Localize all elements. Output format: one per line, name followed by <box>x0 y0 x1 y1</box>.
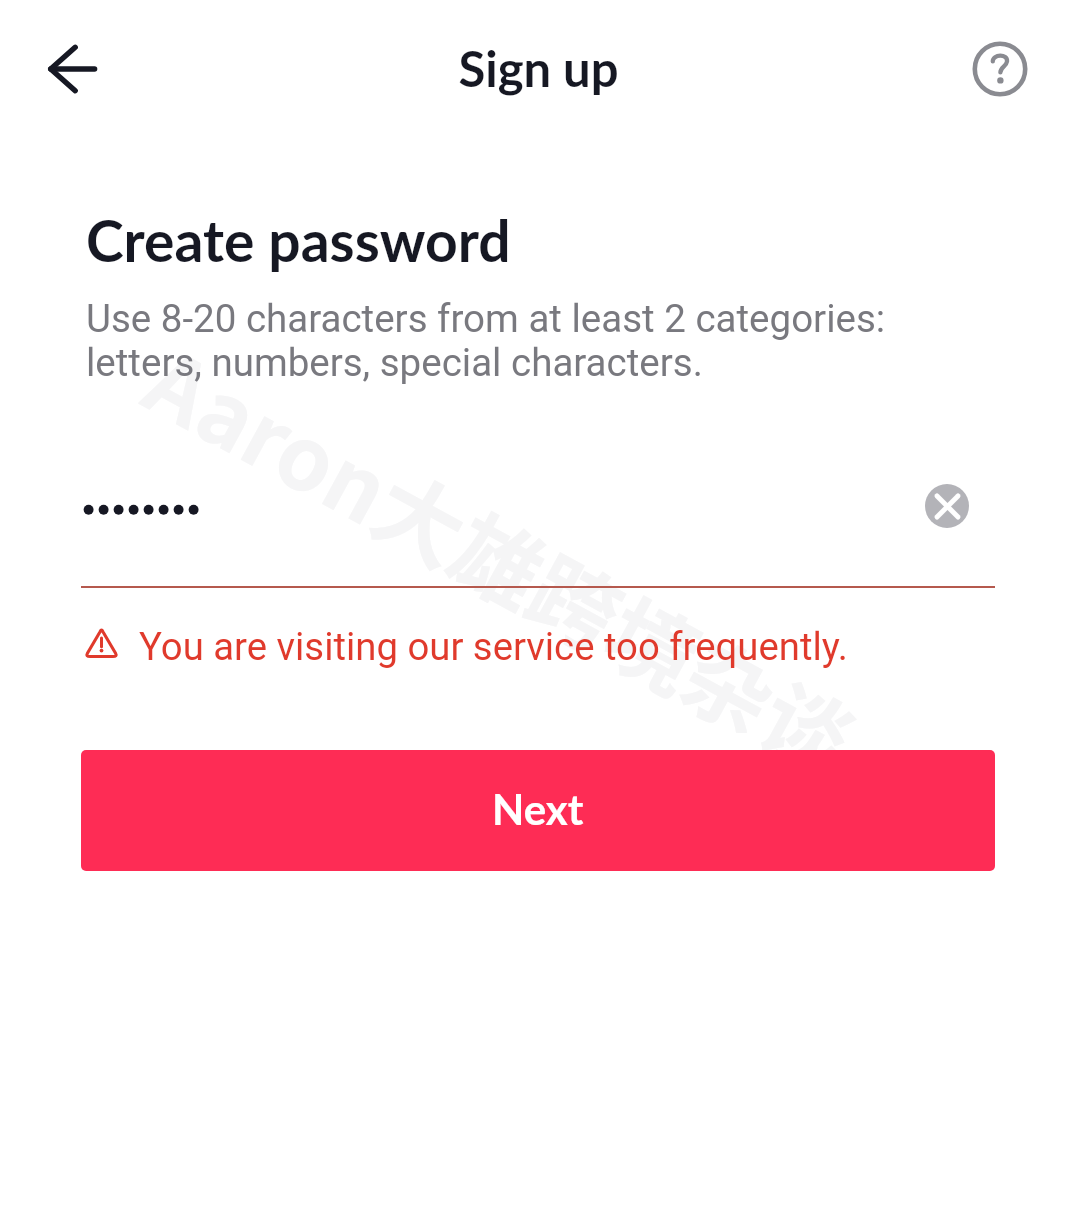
button[interactable]: Back <box>25 17 122 121</box>
staticText: Create password <box>86 206 511 274</box>
button[interactable]: Next <box>81 750 995 871</box>
staticText: Use 8-20 characters from at least 2 cate… <box>86 296 886 386</box>
staticText: Aaron大雄跨境杂谈 <box>126 314 878 802</box>
button[interactable]: Clear text <box>911 470 983 542</box>
staticText: You are visiting our service too frequen… <box>139 624 848 669</box>
staticText: Next <box>492 784 584 834</box>
button[interactable]: Help <box>952 21 1048 117</box>
staticText: Sign up <box>458 39 619 98</box>
